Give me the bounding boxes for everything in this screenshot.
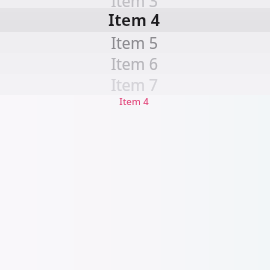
- staticText: Item 7: [111, 74, 158, 95]
- staticText: Item 3: [111, 0, 158, 11]
- button[interactable]: Item 3: [0, 0, 270, 11]
- staticText: Item 5: [111, 32, 158, 53]
- staticText: Item 4: [108, 9, 160, 31]
- button[interactable]: Item 7: [0, 73, 270, 95]
- staticText: Item 4: [119, 95, 149, 108]
- button[interactable]: Item 4: [0, 93, 270, 109]
- button[interactable]: Item 5: [0, 31, 270, 53]
- button[interactable]: Item 6: [0, 52, 270, 74]
- button[interactable]: Item 4: [0, 9, 270, 31]
- staticText: Item 6: [111, 53, 158, 74]
